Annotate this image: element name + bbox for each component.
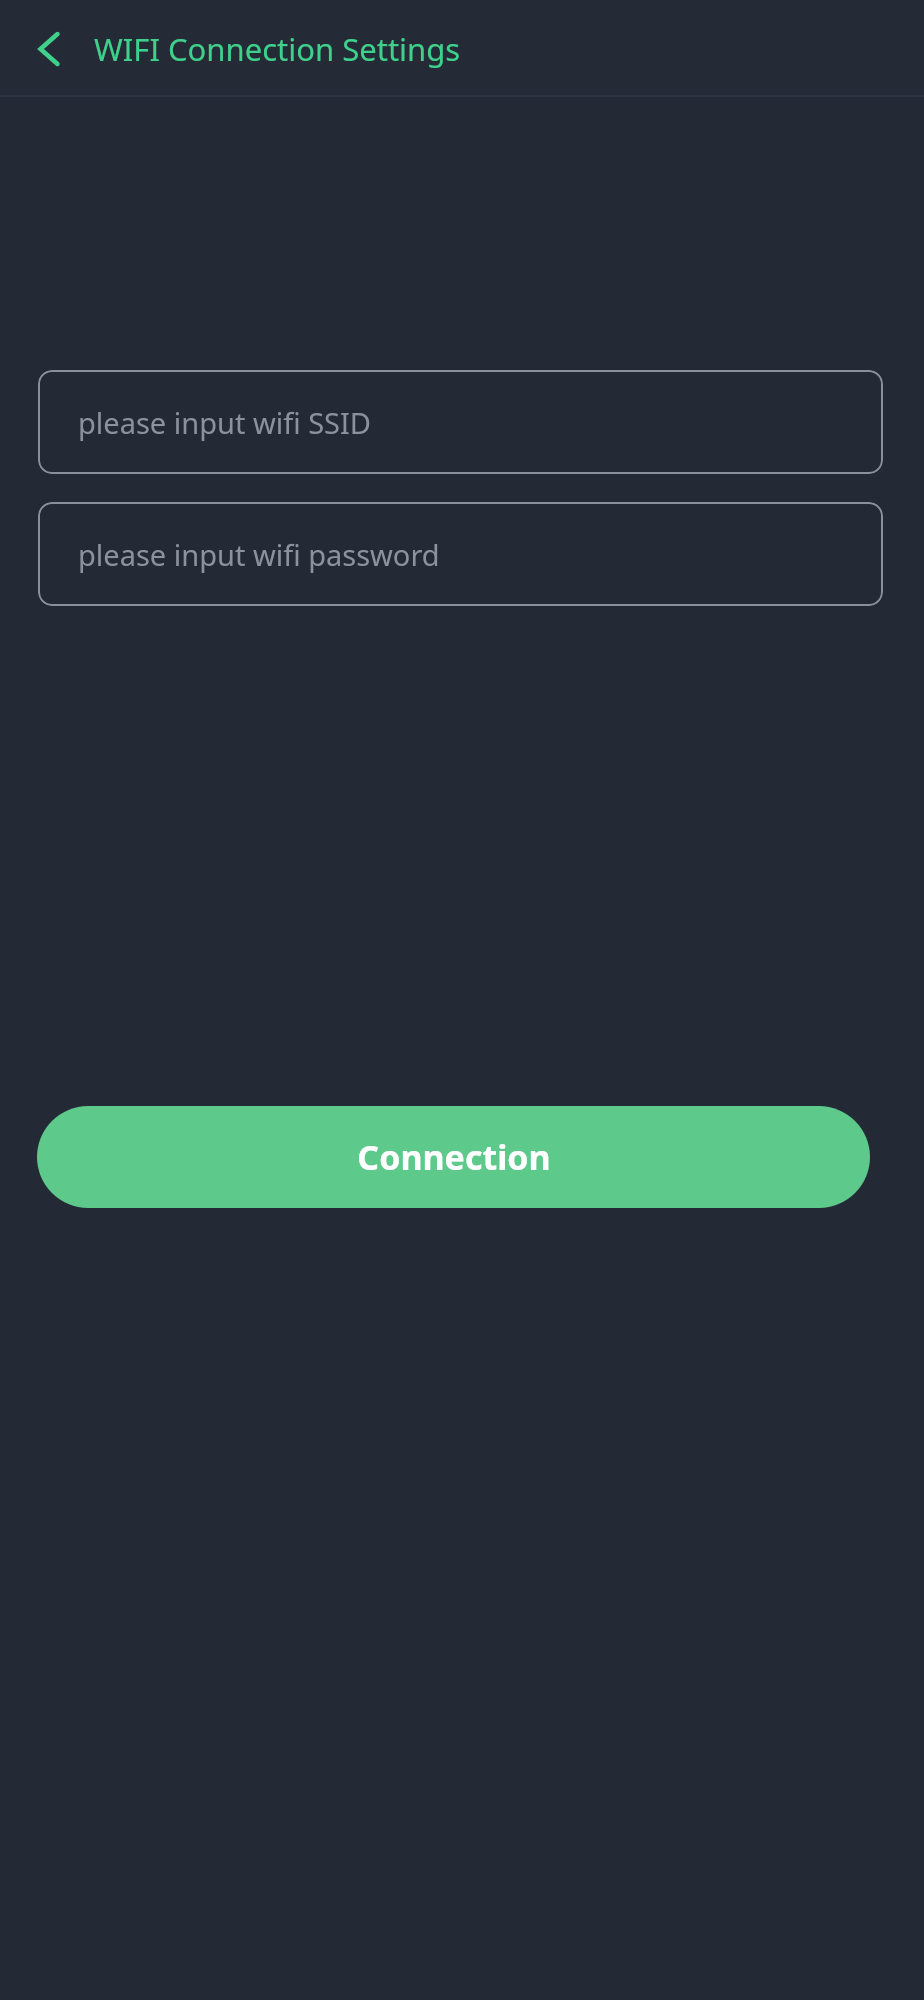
staticText: please input wifi SSID	[78, 403, 372, 442]
button[interactable]: please input wifi password	[38, 502, 883, 606]
button[interactable]: Back	[14, 13, 86, 85]
staticText: Connection	[357, 1134, 551, 1180]
staticText: please input wifi password	[78, 535, 440, 574]
button[interactable]: Connection	[37, 1106, 870, 1208]
staticText: WIFI Connection Settings	[94, 28, 461, 70]
button[interactable]: please input wifi SSID	[38, 370, 883, 474]
